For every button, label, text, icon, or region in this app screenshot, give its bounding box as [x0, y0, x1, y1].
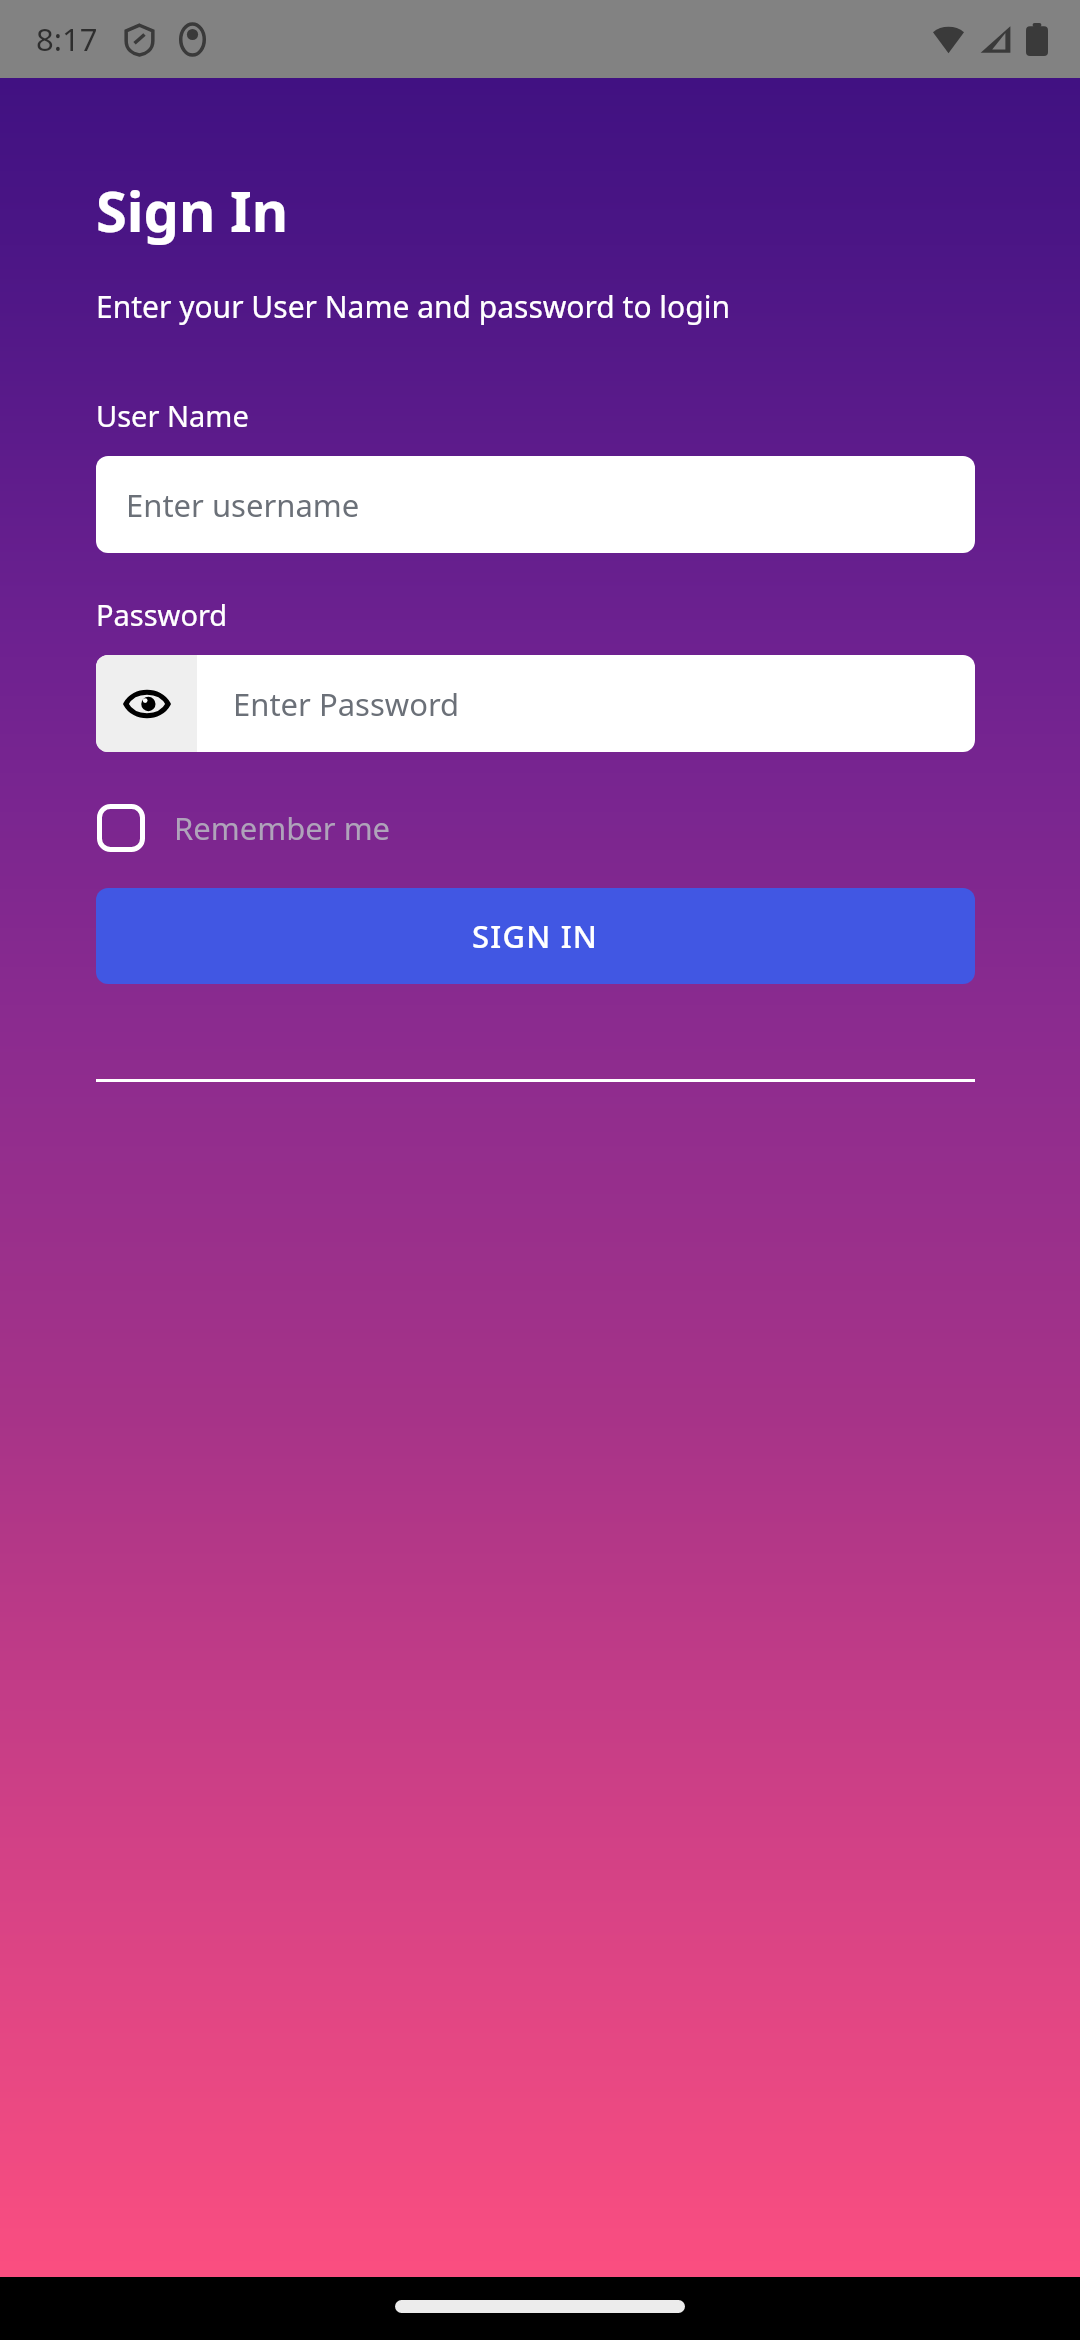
button[interactable]: SIGN IN	[96, 888, 975, 984]
staticText: User Name	[96, 396, 249, 435]
button[interactable]: Enter Password	[197, 655, 975, 752]
button[interactable]: Remember me	[96, 792, 391, 864]
staticText: Remember me	[174, 807, 391, 849]
staticText: Enter your User Name and password to log…	[96, 286, 730, 327]
staticText: Password	[96, 595, 228, 634]
staticText: Enter Password	[233, 683, 460, 725]
staticText: 8:17	[36, 18, 98, 60]
staticText: Enter username	[126, 484, 360, 526]
staticText: Sign In	[96, 172, 289, 248]
button[interactable]: Enter username	[96, 456, 975, 553]
button[interactable]: Show password	[96, 655, 197, 752]
staticText: SIGN IN	[472, 915, 599, 957]
